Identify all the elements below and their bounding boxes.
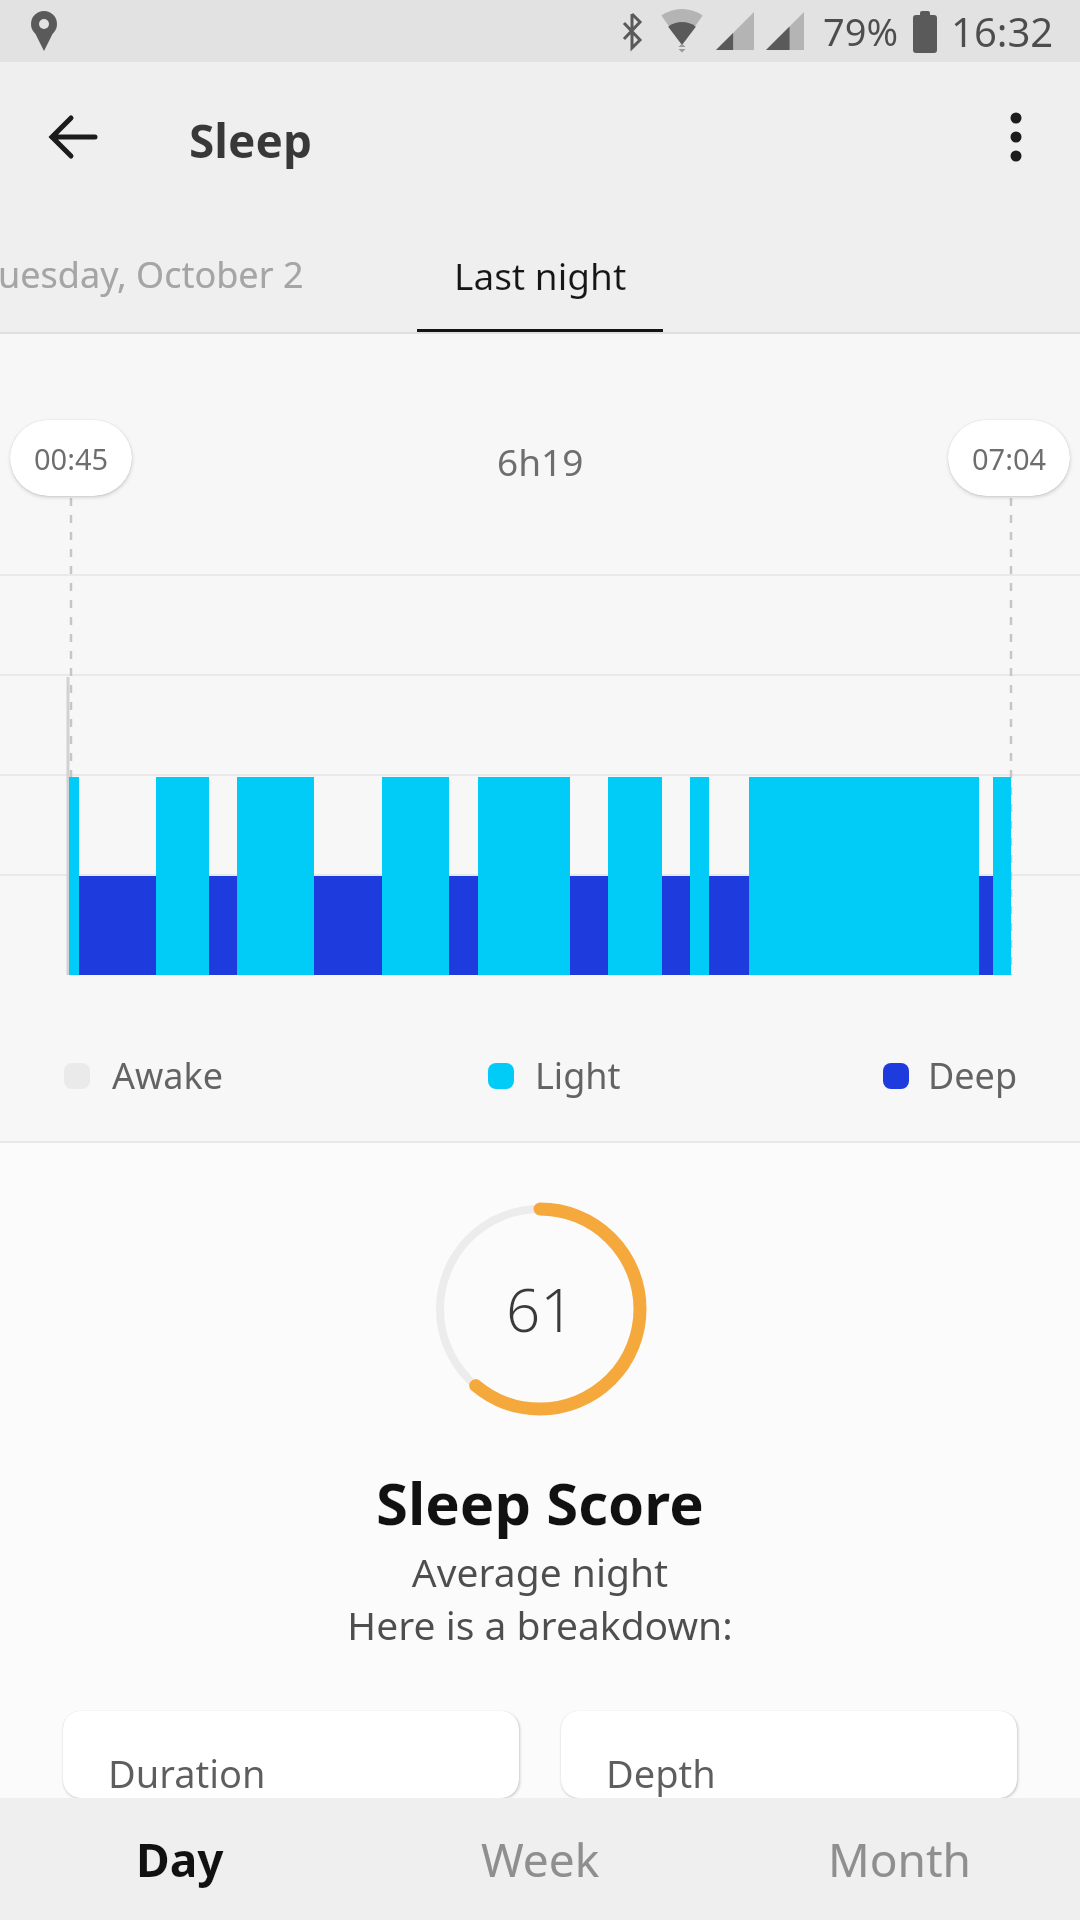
staticText: Month	[828, 1828, 972, 1891]
button[interactable]	[25, 89, 121, 185]
staticText: Week	[481, 1828, 600, 1891]
staticText: Last night	[454, 250, 627, 300]
button[interactable]: Month	[720, 1798, 1080, 1920]
button[interactable]: Day	[0, 1798, 360, 1920]
staticText: Average night Here is a breakdown:	[347, 1545, 733, 1651]
staticText: 00:45	[34, 439, 109, 478]
staticText: Awake	[112, 1051, 224, 1100]
staticText: Sleep Score	[376, 1463, 704, 1542]
staticText: 79%	[823, 5, 899, 57]
staticText: Depth	[606, 1747, 716, 1798]
staticText: 07:04	[972, 439, 1047, 478]
staticText: 61	[506, 1268, 575, 1350]
staticText: Sleep	[189, 109, 313, 172]
staticText: uesday, October 2	[0, 250, 304, 299]
staticText: 16:32	[951, 4, 1054, 58]
button[interactable]: Duration	[63, 1711, 519, 1798]
button[interactable]: Week	[360, 1798, 720, 1920]
staticText: 6h19	[497, 436, 584, 486]
staticText: Duration	[108, 1747, 266, 1798]
button[interactable]	[980, 101, 1052, 173]
button[interactable]: Last night	[417, 210, 663, 332]
staticText: Light	[535, 1051, 621, 1100]
staticText: Day	[136, 1828, 224, 1891]
staticText: Deep	[928, 1051, 1018, 1100]
button[interactable]: Depth	[561, 1711, 1017, 1798]
